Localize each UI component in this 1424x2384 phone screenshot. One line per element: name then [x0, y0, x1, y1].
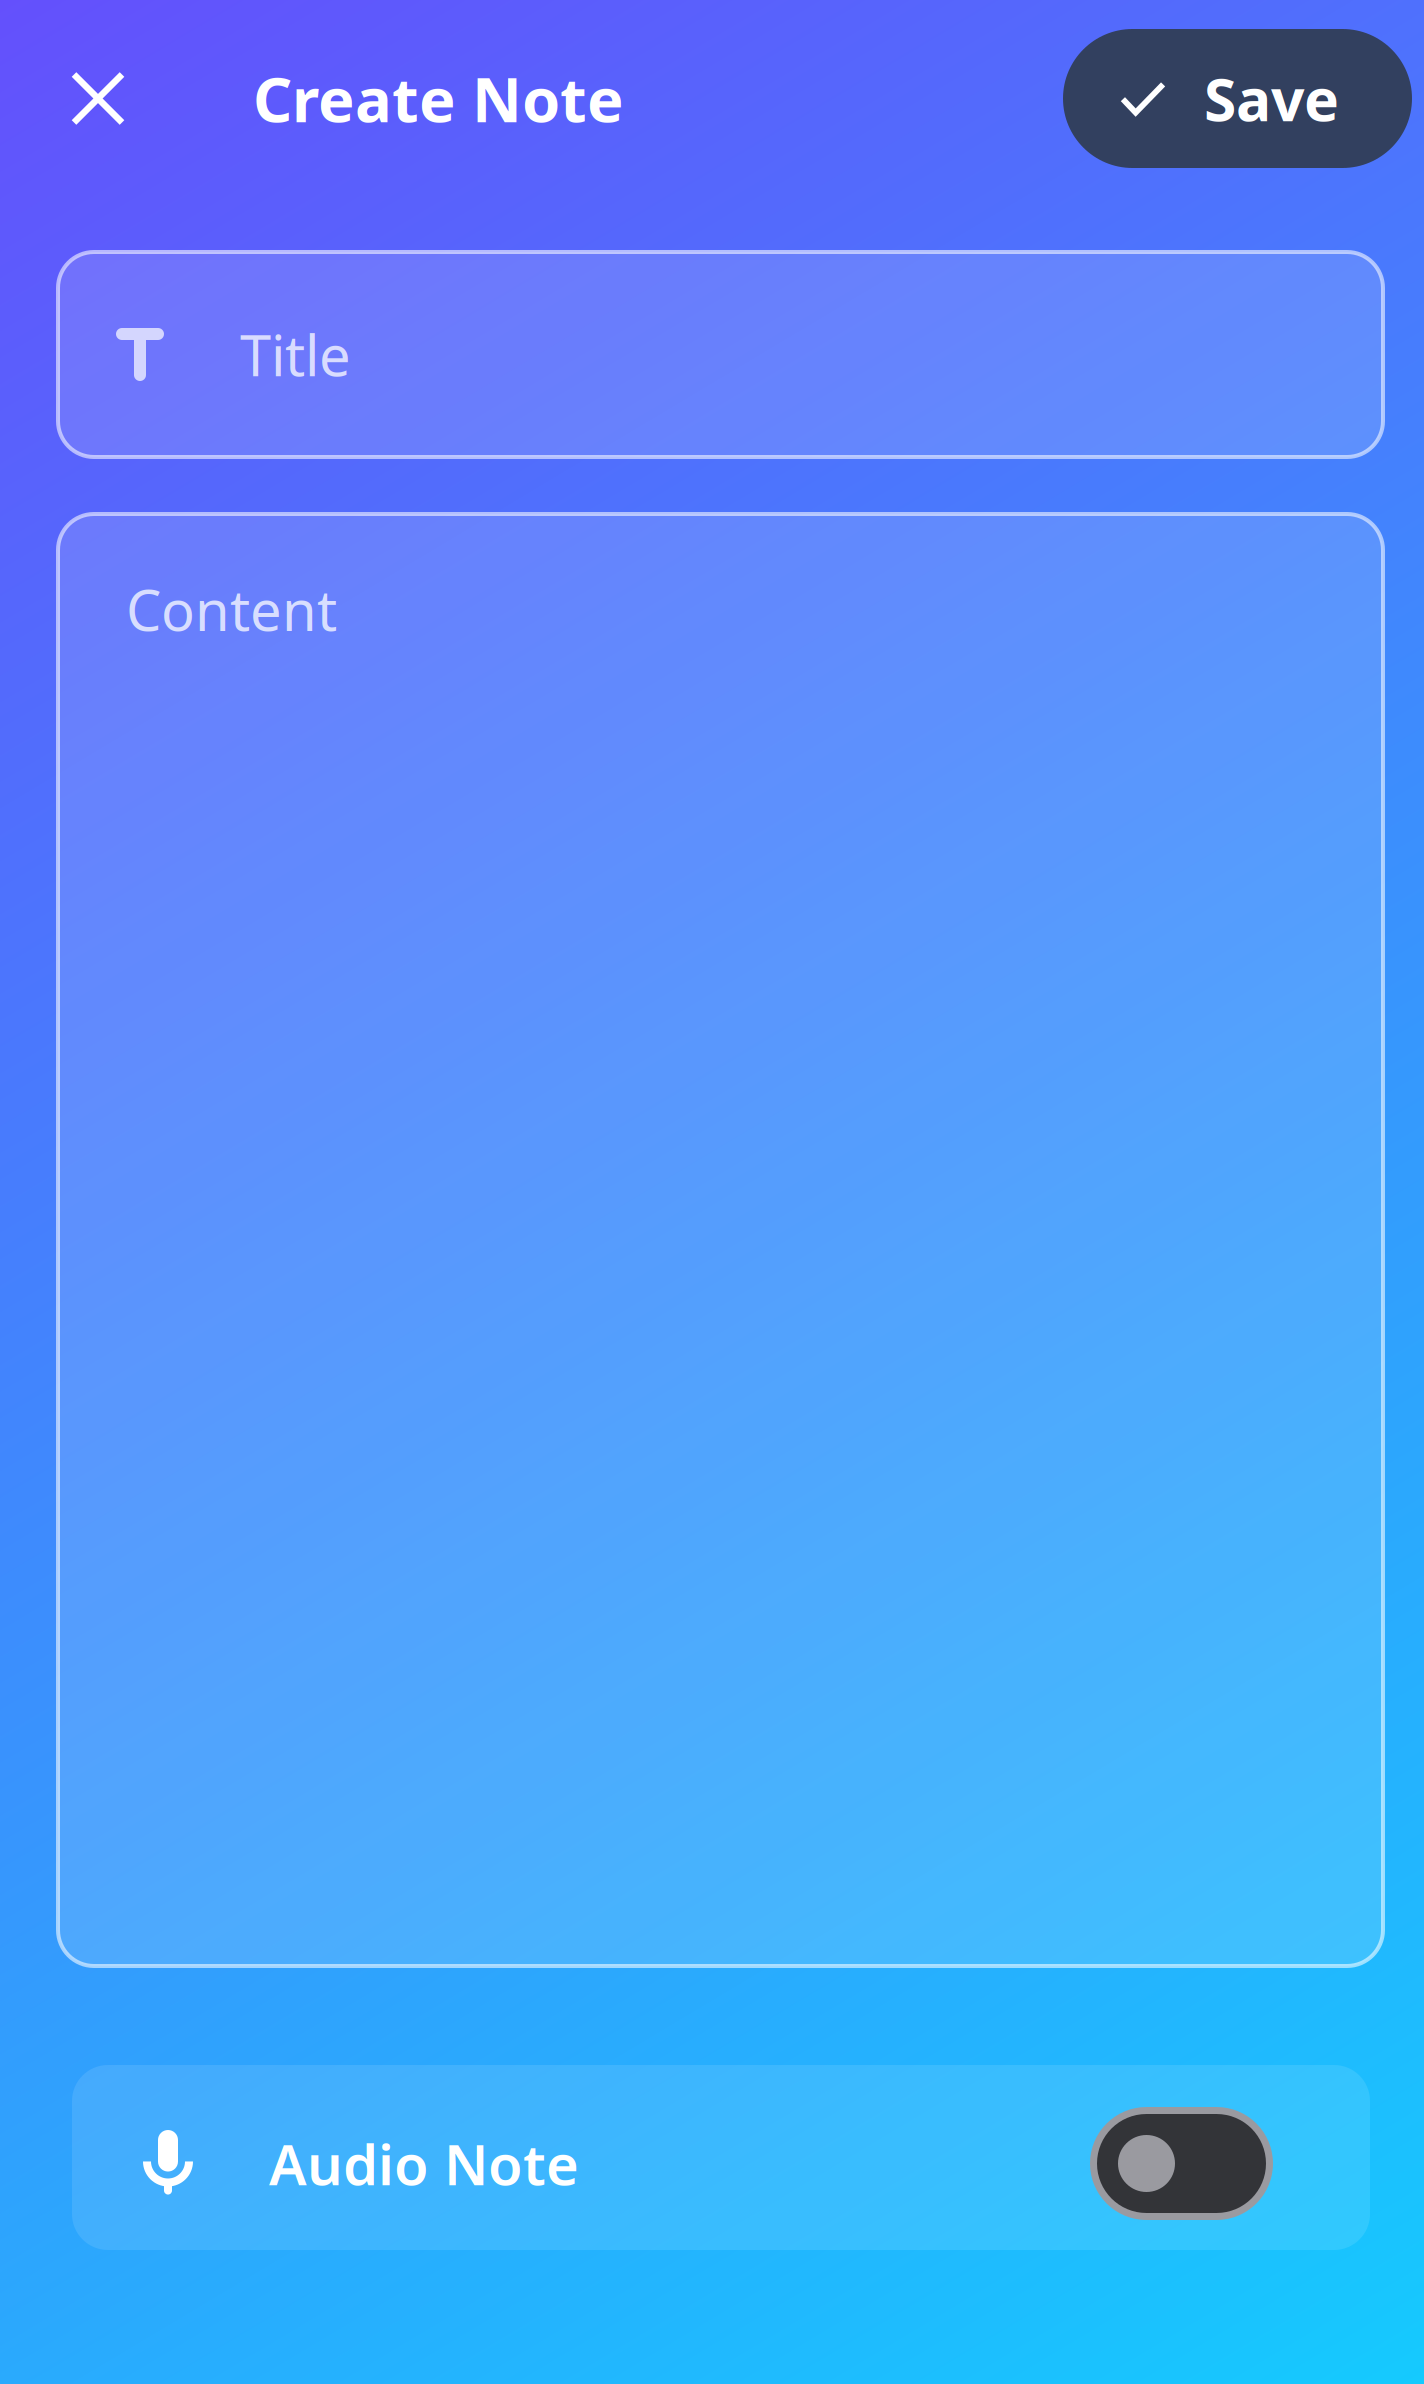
button[interactable]: Title	[58, 252, 1383, 457]
button[interactable]: Audio Note	[72, 2065, 1370, 2250]
button[interactable]: Close	[0, 49, 253, 147]
button[interactable]: Content	[58, 514, 1383, 1966]
staticText: Title	[240, 317, 351, 392]
staticText: Save	[1204, 59, 1339, 137]
staticText: Audio Note	[269, 2126, 579, 2201]
staticText: Create Note	[253, 58, 624, 139]
staticText: Content	[126, 572, 337, 646]
button[interactable]: Save	[1063, 29, 1412, 168]
